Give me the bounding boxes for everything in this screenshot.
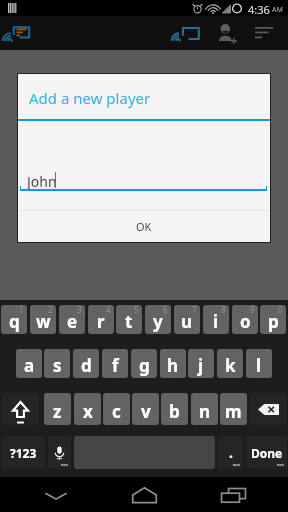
button[interactable]: s [44,349,70,378]
staticText: n [199,400,211,423]
button[interactable]: q [1,305,27,334]
button[interactable]: . [218,436,243,469]
staticText: 2 [48,305,53,315]
staticText: m [225,400,242,423]
staticText: . [229,443,233,462]
button[interactable]: ?123 [2,436,45,469]
button[interactable]: OK [18,211,270,242]
staticText: AM [272,5,283,15]
button[interactable]: Sort [246,16,282,50]
button[interactable]: w [30,305,56,334]
button[interactable]: Cast [179,16,213,50]
button[interactable]: f [102,349,128,378]
staticText: g [139,354,150,377]
staticText: k [225,354,236,377]
staticText: u [181,310,193,333]
button[interactable]: v [132,393,159,425]
staticText: 4:36 [248,2,270,17]
button[interactable]: m [220,393,247,425]
staticText: h [167,354,179,377]
button[interactable]: n [191,393,218,425]
button[interactable]: l [246,349,272,378]
staticText: q [9,310,20,333]
button[interactable]: c [103,393,130,425]
staticText: w [36,310,51,333]
staticText: 4 [106,305,111,315]
button[interactable]: r [88,305,114,334]
button[interactable]: t [116,305,142,334]
button[interactable]: x [74,393,101,425]
button[interactable]: j [188,349,214,378]
staticText: e [67,310,78,333]
staticText: v [141,400,151,423]
staticText: 7 [192,305,197,315]
button[interactable]: Hide keyboard [24,477,88,512]
staticText: 6 [163,305,168,315]
button[interactable]: b [161,393,188,425]
staticText: x [83,400,93,423]
staticText: Done [251,445,283,461]
staticText: r [97,310,105,333]
button[interactable]: i [203,305,229,334]
button[interactable]: o [232,305,258,334]
button[interactable]: a [16,349,42,378]
button[interactable]: u [174,305,200,334]
staticText: John [27,172,57,191]
staticText: t [125,310,133,333]
staticText: o [240,310,251,333]
button[interactable]: App icon [0,16,40,50]
button[interactable]: Home [112,477,176,512]
button[interactable]: Shift [2,393,39,425]
staticText: j [198,354,204,377]
staticText: p [268,310,279,333]
staticText: c [112,400,121,423]
staticText: 1 [19,305,24,315]
staticText: ?123 [10,445,37,461]
button[interactable]: Done [247,436,287,469]
button[interactable]: Voice input [48,436,71,469]
staticText: z [53,400,62,423]
staticText: d [81,354,92,377]
button[interactable]: Recent apps [201,477,265,512]
button[interactable]: k [217,349,243,378]
staticText: y [153,310,163,333]
button[interactable]: h [160,349,186,378]
staticText: s [53,354,62,377]
staticText: Add a new player [29,88,151,108]
staticText: a [24,354,35,377]
staticText: 5 [134,305,139,315]
button[interactable]: e [59,305,85,334]
staticText: i [213,310,219,333]
staticText: f [112,354,119,377]
button[interactable]: p [260,305,286,334]
staticText: b [169,400,180,423]
staticText: OK [136,219,152,234]
button[interactable]: y [145,305,171,334]
staticText: 0 [278,305,283,315]
staticText: l [256,354,262,377]
button[interactable]: g [131,349,157,378]
button[interactable]: z [44,393,71,425]
button[interactable]: d [73,349,99,378]
staticText: 8 [221,305,226,315]
staticText: 3 [77,305,82,315]
button[interactable]: Add player [210,16,245,50]
staticText: 9 [250,305,255,315]
button[interactable]: Backspace [250,393,287,425]
